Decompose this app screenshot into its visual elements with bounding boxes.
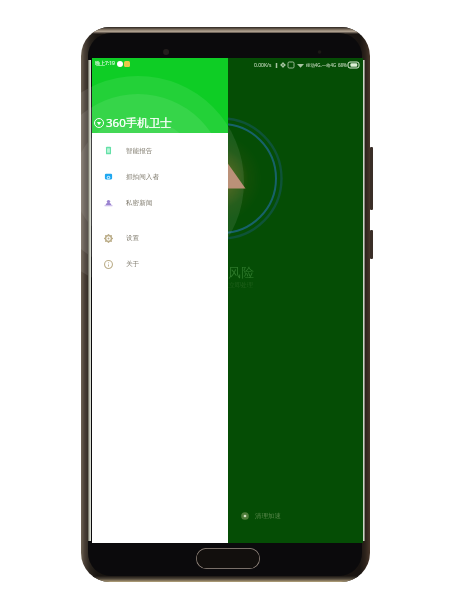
staticText: 360手机卫士 — [106, 115, 172, 131]
staticText: 0.00K/s — [254, 62, 272, 69]
staticText: 移动4G.一格4G — [306, 62, 337, 68]
staticText: 晚上7:19 — [95, 60, 115, 67]
button[interactable]: 智能报告 — [92, 138, 228, 164]
staticText: 智能报告 — [126, 147, 153, 155]
staticText: 有风险 — [215, 264, 254, 280]
button[interactable]: Power — [370, 230, 373, 259]
staticText: 68% — [338, 62, 347, 68]
staticText: 私密新闻 — [126, 199, 153, 207]
staticText: 关于 — [126, 260, 140, 268]
button[interactable]: Volume — [370, 147, 373, 210]
button[interactable]: 抓拍闯入者 — [92, 164, 228, 190]
staticText: 设置 — [126, 234, 140, 242]
staticText: 清理加速 — [255, 512, 281, 520]
button[interactable]: 设置 — [92, 225, 228, 251]
button[interactable]: 清理加速 — [241, 512, 281, 520]
staticText: 建议立即处理 — [217, 281, 253, 289]
button[interactable]: Home — [196, 548, 260, 569]
button[interactable]: 私密新闻 — [92, 190, 228, 216]
staticText: 抓拍闯入者 — [126, 173, 159, 181]
button[interactable]: 关于 — [92, 251, 228, 277]
